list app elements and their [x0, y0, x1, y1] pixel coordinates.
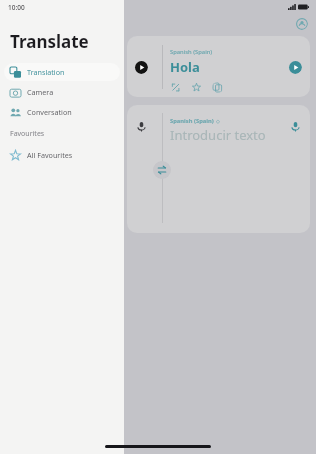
button[interactable]: Favourite — [191, 82, 202, 93]
button[interactable]: Microphone target — [288, 119, 302, 133]
staticText: Spanish (Spain) — [170, 48, 213, 56]
button[interactable]: Play source — [134, 60, 148, 74]
button[interactable]: All Favourites — [4, 146, 120, 164]
staticText: Favourites — [10, 129, 45, 139]
button[interactable]: Translation — [4, 63, 120, 81]
button[interactable]: Play translation — [288, 60, 302, 74]
button[interactable]: Microphone source — [134, 119, 148, 133]
button[interactable]: Camera — [4, 83, 120, 101]
button[interactable]: Account — [295, 17, 308, 30]
staticText: Spanish (Spain) — [170, 117, 214, 125]
staticText: Conversation — [27, 107, 72, 117]
button[interactable]: Conversation — [4, 103, 120, 121]
staticText: Translation — [27, 67, 65, 77]
staticText: Camera — [27, 87, 54, 97]
staticText: All Favourites — [27, 150, 73, 160]
staticText: 10:00 — [8, 3, 25, 12]
button[interactable]: Expand — [170, 82, 181, 93]
staticText: Translate — [10, 30, 89, 53]
staticText: Introducir texto — [170, 126, 266, 144]
button[interactable]: Copy — [212, 82, 223, 93]
staticText: Hola — [170, 58, 200, 76]
staticText: ◇ — [216, 118, 220, 124]
button[interactable]: Swap languages — [153, 161, 171, 179]
